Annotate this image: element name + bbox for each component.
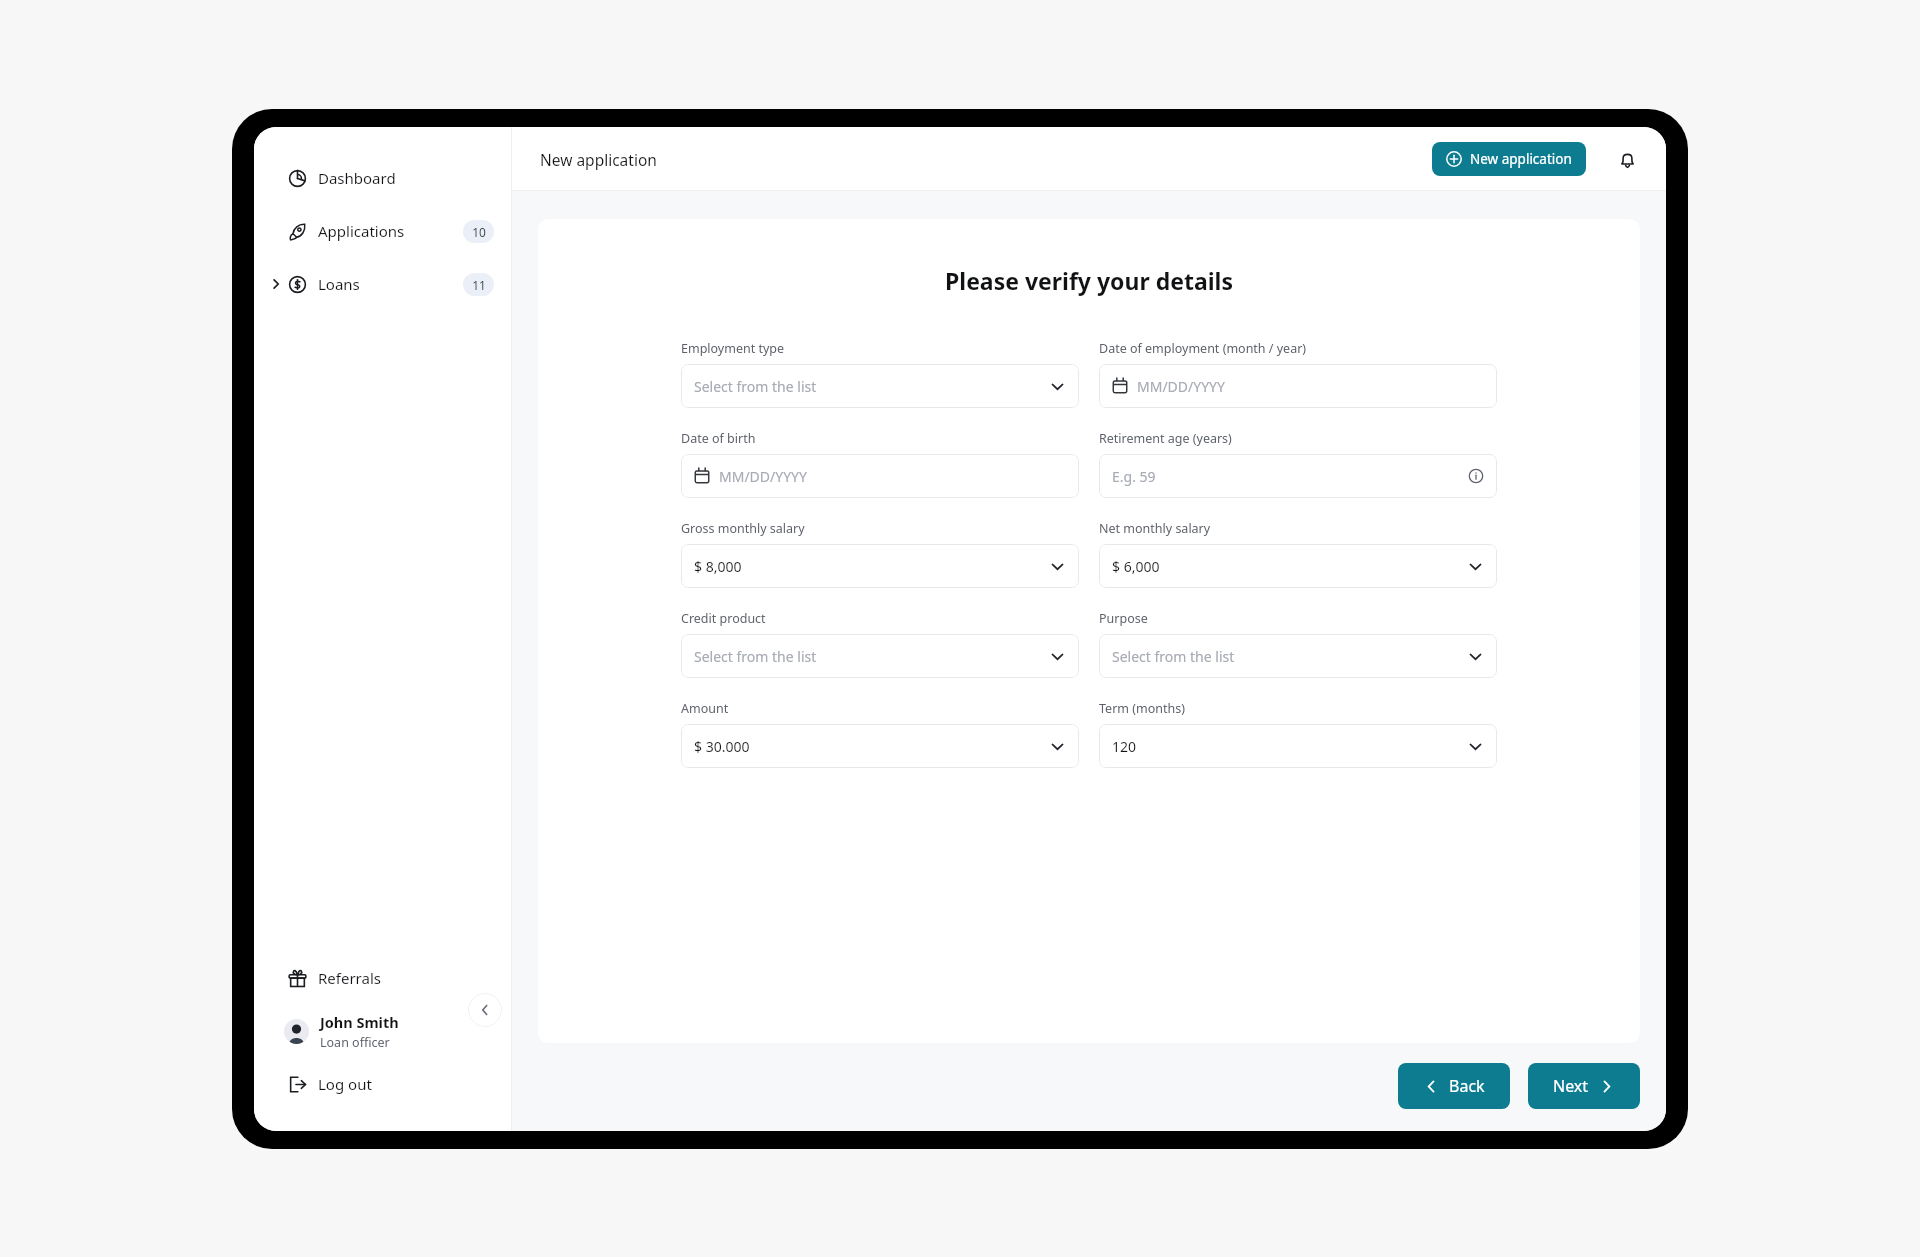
staticText: Net monthly salary — [1099, 520, 1211, 537]
button[interactable]: Select from the list — [681, 634, 1079, 678]
button[interactable]: $ 30.000 — [681, 724, 1079, 768]
staticText: E.g. 59 — [1112, 467, 1156, 486]
staticText: Retirement age (years) — [1099, 430, 1232, 447]
staticText: Select from the list — [694, 377, 817, 396]
staticText: Term (months) — [1099, 700, 1185, 717]
staticText: New application — [1470, 150, 1572, 168]
staticText: Dashboard — [318, 168, 396, 188]
staticText: Date of birth — [681, 430, 756, 447]
staticText: Please verify your details — [945, 265, 1233, 296]
staticText: Applications — [318, 221, 405, 241]
button[interactable]: John Smith — [254, 1009, 512, 1053]
staticText: 10 — [472, 224, 486, 240]
staticText: Log out — [318, 1074, 372, 1094]
staticText: Next — [1553, 1075, 1589, 1097]
button[interactable]: Select from the list — [1099, 634, 1497, 678]
staticText: 11 — [472, 277, 486, 293]
staticText: Loan officer — [320, 1034, 390, 1051]
button[interactable]: MM/DD/YYYY — [681, 454, 1079, 498]
button[interactable]: Applications — [254, 214, 512, 248]
button[interactable]: 120 — [1099, 724, 1497, 768]
button[interactable]: E.g. 59 — [1099, 454, 1497, 498]
staticText: Employment type — [681, 340, 785, 357]
staticText: Credit product — [681, 610, 766, 627]
staticText: Amount — [681, 700, 729, 717]
button[interactable]: MM/DD/YYYY — [1099, 364, 1497, 408]
button[interactable]: Log out — [254, 1067, 512, 1101]
staticText: Select from the list — [1112, 647, 1235, 666]
button[interactable]: Next — [1528, 1063, 1640, 1109]
button[interactable]: New application — [1432, 142, 1586, 176]
button[interactable]: Back — [1398, 1063, 1510, 1109]
staticText: $ 30.000 — [694, 737, 750, 756]
button[interactable]: Notifications — [1612, 144, 1642, 174]
staticText: MM/DD/YYYY — [1137, 377, 1225, 396]
button[interactable]: Referrals — [254, 961, 512, 995]
button[interactable]: $ 8,000 — [681, 544, 1079, 588]
staticText: Referrals — [318, 968, 381, 988]
staticText: 120 — [1112, 737, 1137, 756]
button[interactable]: Dashboard — [254, 161, 512, 195]
staticText: Purpose — [1099, 610, 1148, 627]
button[interactable]: Collapse sidebar — [468, 993, 502, 1027]
button[interactable]: Loans — [254, 267, 512, 301]
button[interactable]: $ 6,000 — [1099, 544, 1497, 588]
staticText: MM/DD/YYYY — [719, 467, 807, 486]
staticText: Loans — [318, 274, 360, 294]
staticText: Gross monthly salary — [681, 520, 805, 537]
staticText: Date of employment (month / year) — [1099, 340, 1307, 357]
staticText: Back — [1449, 1075, 1485, 1097]
button[interactable]: Select from the list — [681, 364, 1079, 408]
staticText: $ 6,000 — [1112, 557, 1160, 576]
staticText: John Smith — [320, 1012, 399, 1032]
staticText: $ 8,000 — [694, 557, 742, 576]
staticText: New application — [540, 149, 657, 170]
staticText: Select from the list — [694, 647, 817, 666]
